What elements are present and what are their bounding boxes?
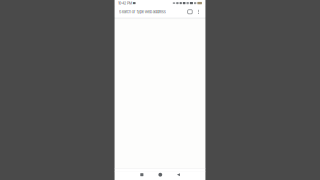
staticText: Search or type web address	[119, 9, 166, 14]
button[interactable]: Back	[169, 169, 187, 180]
button[interactable]: Home	[151, 169, 169, 180]
button[interactable]: Tabs	[185, 6, 195, 18]
staticText: 10:42 PM	[118, 1, 132, 5]
button[interactable]: Search or type web address	[115, 6, 187, 18]
button[interactable]: More options	[195, 6, 202, 18]
button[interactable]: Recent apps	[133, 169, 151, 180]
